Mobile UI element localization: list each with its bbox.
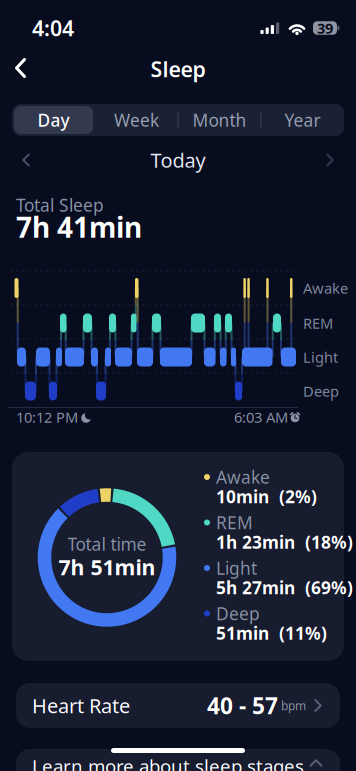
staticText: Heart Rate <box>32 692 130 719</box>
staticText: 7h 51min <box>58 553 155 581</box>
staticText: Light <box>303 347 338 367</box>
button[interactable]: Month <box>178 104 261 136</box>
staticText: REM <box>303 313 333 333</box>
staticText: Sleep <box>150 55 205 83</box>
staticText: Deep <box>303 381 339 401</box>
staticText: Total Sleep <box>16 193 104 216</box>
staticText: Total time <box>67 532 146 555</box>
button[interactable]: Week <box>95 104 178 136</box>
staticText: Month <box>192 108 246 131</box>
staticText: 5h 27min (69%) <box>216 576 353 599</box>
staticText: Learn more about sleep stages <box>32 754 304 771</box>
staticText: 4:04 <box>32 14 74 42</box>
staticText: Day <box>37 108 69 131</box>
staticText: Light <box>216 556 257 579</box>
staticText: Deep <box>216 602 260 625</box>
button[interactable]: Learn more about sleep stages <box>16 749 340 771</box>
staticText: 40 - 57 <box>207 690 278 720</box>
staticText: Awake <box>216 465 270 488</box>
button[interactable]: Day <box>12 104 95 136</box>
staticText: bpm <box>278 697 306 713</box>
button[interactable]: Heart Rate <box>16 683 340 728</box>
staticText: 51min (11%) <box>216 621 327 644</box>
staticText: REM <box>216 511 253 534</box>
staticText: Week <box>114 108 159 131</box>
button[interactable]: Next day <box>315 145 345 175</box>
staticText: 6:03 AM <box>234 407 288 427</box>
staticText: 7h 41min <box>16 208 142 246</box>
staticText: 1h 23min (18%) <box>216 530 353 553</box>
staticText: 39 <box>317 18 333 38</box>
staticText: 10:12 PM <box>16 407 78 427</box>
button[interactable]: Back <box>0 48 40 88</box>
staticText: Awake <box>303 278 348 298</box>
staticText: Year <box>284 108 320 131</box>
staticText: 10min (2%) <box>216 485 317 508</box>
button[interactable]: Previous day <box>11 145 41 175</box>
staticText: Today <box>150 147 205 173</box>
button[interactable]: Year <box>261 104 344 136</box>
